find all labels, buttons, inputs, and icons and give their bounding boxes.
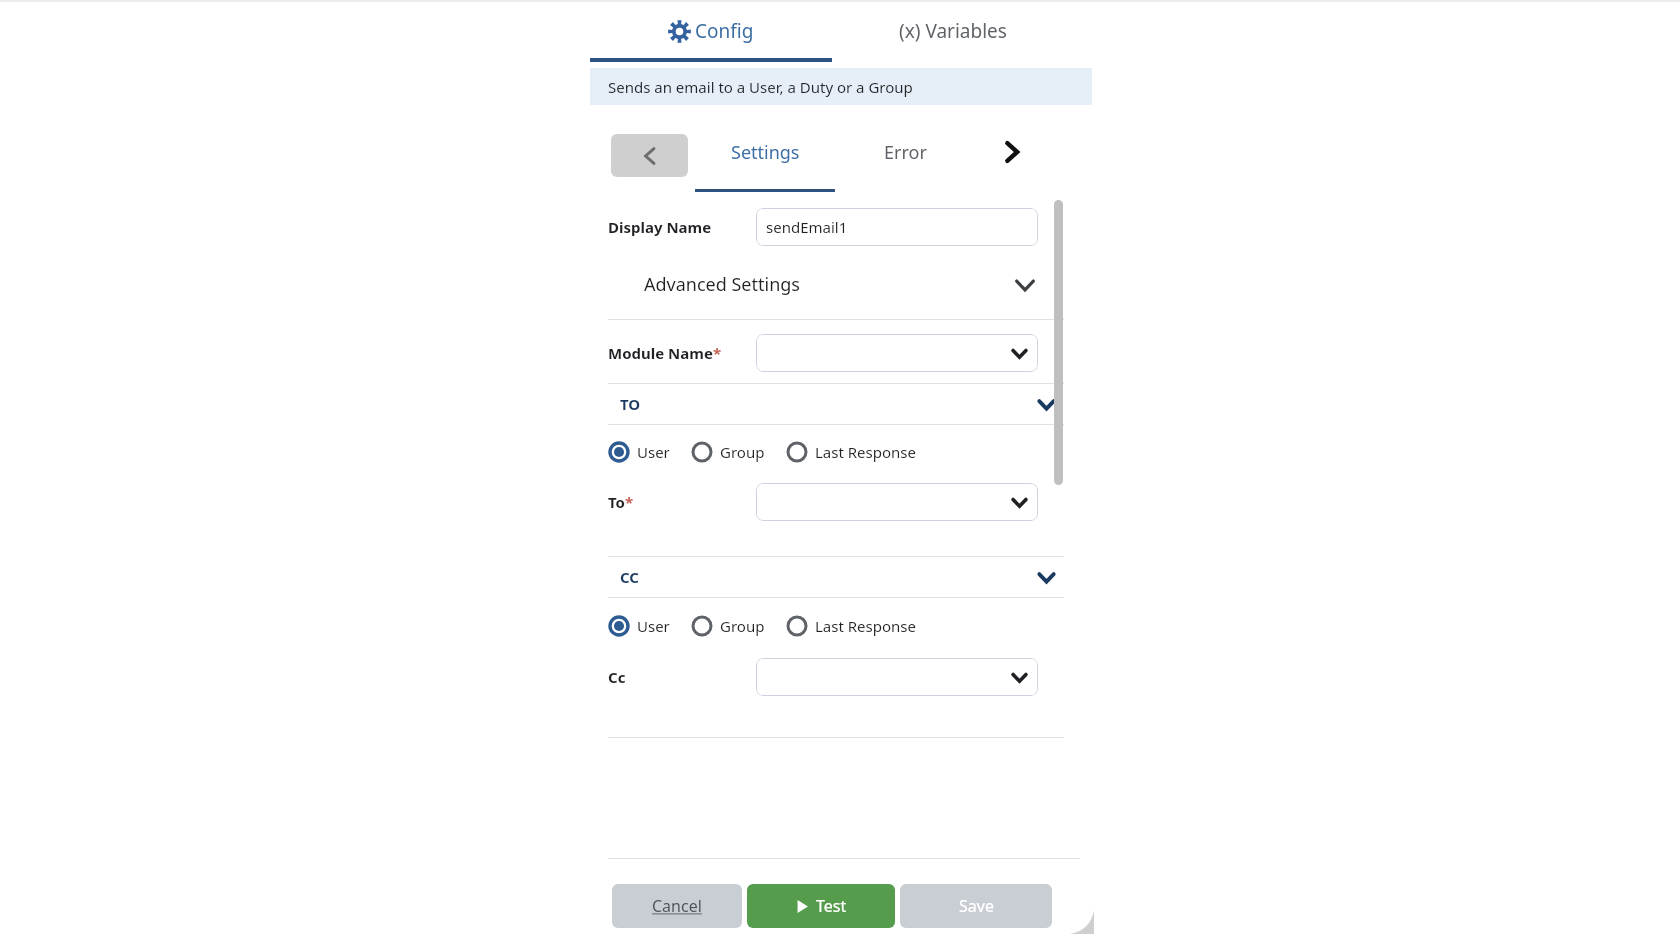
button[interactable]: Advanced Settings bbox=[608, 258, 1064, 311]
staticText: Group bbox=[720, 616, 765, 636]
staticText: Cc bbox=[608, 667, 756, 687]
button[interactable]: Last Response bbox=[786, 615, 916, 637]
button[interactable]: CC bbox=[608, 557, 1064, 597]
button[interactable]: Cancel bbox=[612, 884, 742, 928]
button[interactable]: TO bbox=[608, 384, 1064, 424]
button[interactable] bbox=[756, 658, 1038, 696]
staticText: Config bbox=[695, 18, 754, 44]
button[interactable] bbox=[756, 334, 1038, 372]
staticText: (x) Variables bbox=[899, 18, 1007, 44]
staticText: Group bbox=[720, 442, 765, 462]
staticText: sendEmail1 bbox=[766, 217, 848, 237]
button[interactable]: Last Response bbox=[786, 441, 916, 463]
staticText: Settings bbox=[731, 140, 800, 165]
staticText: Cancel bbox=[652, 895, 702, 917]
staticText: * bbox=[625, 492, 634, 512]
staticText: User bbox=[637, 616, 670, 636]
staticText: Last Response bbox=[815, 616, 916, 636]
button[interactable]: Save bbox=[900, 884, 1052, 928]
button[interactable]: Test bbox=[747, 884, 895, 928]
button[interactable]: (x) Variables bbox=[832, 0, 1074, 62]
staticText: CC bbox=[620, 567, 639, 587]
staticText: Module Name bbox=[608, 343, 713, 363]
button[interactable] bbox=[756, 483, 1038, 521]
staticText: Last Response bbox=[815, 442, 916, 462]
button[interactable]: User bbox=[608, 441, 670, 463]
staticText: TO bbox=[620, 394, 641, 414]
staticText: Advanced Settings bbox=[644, 272, 800, 297]
staticText: User bbox=[637, 442, 670, 462]
button[interactable]: sendEmail1 bbox=[756, 208, 1038, 246]
staticText: Display Name bbox=[608, 217, 756, 237]
staticText: Error bbox=[884, 140, 927, 165]
button[interactable]: Group bbox=[691, 441, 765, 463]
button[interactable]: User bbox=[608, 615, 670, 637]
button[interactable]: Settings bbox=[695, 128, 835, 192]
staticText: Test bbox=[816, 895, 847, 917]
button[interactable]: Config bbox=[590, 0, 832, 62]
button[interactable]: Next tabs bbox=[990, 130, 1034, 174]
staticText: * bbox=[713, 343, 722, 363]
button[interactable]: Previous tabs bbox=[611, 134, 688, 177]
button[interactable]: Error bbox=[835, 128, 975, 192]
staticText: Save bbox=[959, 895, 994, 917]
button[interactable]: Group bbox=[691, 615, 765, 637]
staticText: To bbox=[608, 492, 625, 512]
staticText: Sends an email to a User, a Duty or a Gr… bbox=[608, 77, 913, 97]
